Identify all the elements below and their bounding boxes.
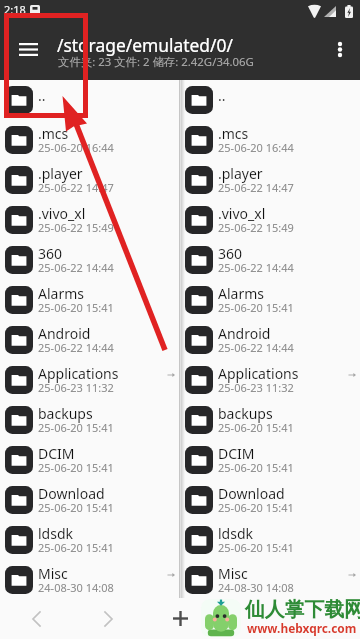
staticText: 25-06-20 15:41 xyxy=(218,500,294,515)
button[interactable]: DCIM xyxy=(0,440,179,480)
staticText: www.hebxqrc.com xyxy=(247,620,357,636)
staticText: 25-06-20 15:41 xyxy=(218,460,294,475)
staticText: DCIM xyxy=(38,444,75,463)
staticText: 25-06-22 14:44 xyxy=(218,260,294,275)
staticText: Alarms xyxy=(218,284,264,303)
button[interactable]: Menu xyxy=(8,18,48,80)
button[interactable]: 360 xyxy=(180,240,360,280)
staticText: 25-06-20 15:41 xyxy=(218,540,294,555)
button[interactable]: 360 xyxy=(0,240,179,280)
staticText: 24-08-30 14:08 xyxy=(38,580,114,595)
button[interactable]: Misc xyxy=(180,560,360,600)
staticText: 25-06-22 14:47 xyxy=(38,180,114,195)
button[interactable]: backups xyxy=(0,400,179,440)
staticText: .player xyxy=(218,164,263,183)
staticText: 25-06-22 14:44 xyxy=(38,340,114,355)
staticText: Download xyxy=(38,484,105,503)
button[interactable]: Applications xyxy=(180,360,360,400)
staticText: 25-06-20 15:41 xyxy=(38,540,114,555)
staticText: .mcs xyxy=(218,124,249,143)
staticText: 25-06-22 15:49 xyxy=(218,220,294,235)
button[interactable]: ldsdk xyxy=(0,520,179,560)
staticText: ldsdk xyxy=(38,524,74,543)
button[interactable]: .mcs xyxy=(0,120,179,160)
staticText: DCIM xyxy=(218,444,255,463)
staticText: 25-06-20 15:41 xyxy=(38,300,114,315)
staticText: Misc xyxy=(218,564,248,583)
staticText: .. xyxy=(38,86,46,105)
staticText: backups xyxy=(38,404,93,423)
staticText: .. xyxy=(218,86,226,105)
staticText: 360 xyxy=(38,244,63,263)
button[interactable]: .player xyxy=(180,160,360,200)
staticText: Applications xyxy=(218,364,299,383)
staticText: .player xyxy=(38,164,83,183)
button[interactable]: DCIM xyxy=(180,440,360,480)
staticText: /storage/emulated/0/ xyxy=(57,33,233,57)
staticText: .mcs xyxy=(38,124,69,143)
staticText: Misc xyxy=(38,564,68,583)
staticText: backups xyxy=(218,404,273,423)
button[interactable]: ldsdk xyxy=(180,520,360,560)
button[interactable]: Android xyxy=(0,320,179,360)
button[interactable]: .vivo_xl xyxy=(180,200,360,240)
button[interactable]: Download xyxy=(0,480,179,520)
button[interactable]: Download xyxy=(180,480,360,520)
staticText: 25-06-22 14:44 xyxy=(218,340,294,355)
staticText: .vivo_xl xyxy=(218,204,266,223)
staticText: 25-06-20 16:44 xyxy=(218,140,294,155)
staticText: 2:18 xyxy=(4,2,26,17)
button[interactable]: .player xyxy=(0,160,179,200)
staticText: 25-06-20 15:41 xyxy=(218,300,294,315)
button[interactable]: Alarms xyxy=(0,280,179,320)
staticText: Alarms xyxy=(38,284,84,303)
staticText: 25-06-20 15:41 xyxy=(38,460,114,475)
button[interactable]: More options xyxy=(320,18,360,80)
button[interactable]: Forward xyxy=(90,598,126,639)
staticText: 360 xyxy=(218,244,243,263)
staticText: 文件夹: 23 文件: 2 储存: 2.42G/34.06G xyxy=(58,54,254,70)
button[interactable]: Back xyxy=(18,598,54,639)
staticText: 25-06-22 14:44 xyxy=(38,260,114,275)
button[interactable]: Android xyxy=(180,320,360,360)
staticText: 25-06-23 11:32 xyxy=(38,380,114,395)
staticText: Android xyxy=(218,324,271,343)
button[interactable]: Misc xyxy=(0,560,179,600)
button[interactable]: .mcs xyxy=(180,120,360,160)
button[interactable]: Applications xyxy=(0,360,179,400)
button[interactable]: .. xyxy=(0,80,179,120)
button[interactable]: .vivo_xl xyxy=(0,200,179,240)
staticText: 25-06-22 14:47 xyxy=(218,180,294,195)
button[interactable]: Add xyxy=(162,598,198,639)
staticText: .vivo_xl xyxy=(38,204,86,223)
staticText: 25-06-22 15:49 xyxy=(38,220,114,235)
staticText: 24-08-30 14:08 xyxy=(218,580,294,595)
staticText: Android xyxy=(38,324,91,343)
staticText: 25-06-20 15:41 xyxy=(38,420,114,435)
staticText: 25-06-20 15:41 xyxy=(38,500,114,515)
staticText: Download xyxy=(218,484,285,503)
staticText: 25-06-23 11:32 xyxy=(218,380,294,395)
staticText: ldsdk xyxy=(218,524,254,543)
button[interactable]: .. xyxy=(180,80,360,120)
button[interactable]: backups xyxy=(180,400,360,440)
staticText: Applications xyxy=(38,364,119,383)
staticText: 25-06-20 15:41 xyxy=(218,420,294,435)
staticText: 仙人掌下载网 xyxy=(245,597,360,622)
button[interactable]: Alarms xyxy=(180,280,360,320)
staticText: 25-06-20 16:44 xyxy=(38,140,114,155)
